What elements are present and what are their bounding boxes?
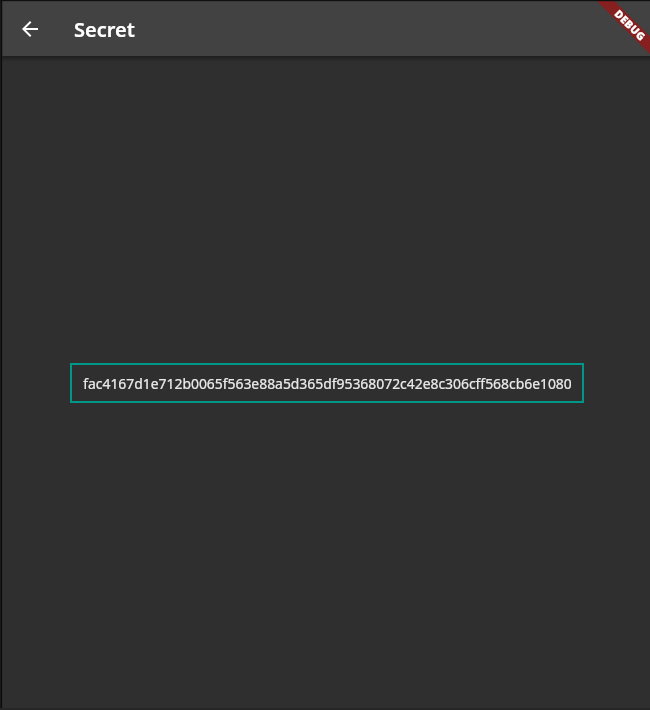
button[interactable]: fac4167d1e712b0065f563e88a5d365df9536807… xyxy=(70,363,584,403)
button[interactable]: Back xyxy=(6,5,54,53)
staticText: DEBUG xyxy=(612,7,649,44)
staticText: fac4167d1e712b0065f563e88a5d365df9536807… xyxy=(83,374,572,393)
staticText: Secret xyxy=(74,16,135,43)
